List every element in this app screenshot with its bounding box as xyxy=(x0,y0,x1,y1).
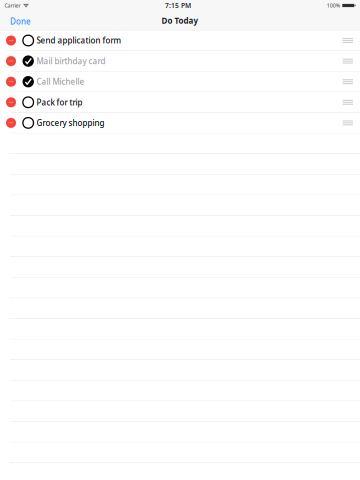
staticText: Carrier xyxy=(4,2,20,9)
button[interactable]: Mail birthday card xyxy=(22,55,105,67)
staticText: Call Michelle xyxy=(36,76,84,87)
button[interactable]: Reorder Call Michelle xyxy=(343,79,353,84)
staticText: 7:15 PM xyxy=(165,1,191,10)
button[interactable]: Reorder Grocery shopping xyxy=(343,120,353,125)
button[interactable]: Call Michelle xyxy=(22,76,84,87)
button[interactable]: Reorder Pack for trip xyxy=(343,100,353,105)
staticText: Done xyxy=(10,16,31,27)
staticText: Do Today xyxy=(161,15,198,26)
button[interactable]: Delete Pack for trip xyxy=(6,97,16,107)
button[interactable]: Reorder Mail birthday card xyxy=(343,59,353,64)
button[interactable]: Grocery shopping xyxy=(22,117,104,129)
staticText: Pack for trip xyxy=(36,97,82,108)
button[interactable]: Delete Mail birthday card xyxy=(6,56,16,66)
staticText: 100% xyxy=(327,2,340,9)
button[interactable]: Delete Send application form xyxy=(6,35,16,45)
button[interactable]: Reorder Send application form xyxy=(343,38,353,43)
button[interactable]: Done xyxy=(0,13,41,30)
staticText: Send application form xyxy=(36,35,121,46)
button[interactable]: Pack for trip xyxy=(22,97,82,108)
staticText: Mail birthday card xyxy=(36,56,105,66)
button[interactable]: Delete Grocery shopping xyxy=(6,118,16,128)
button[interactable]: Delete Call Michelle xyxy=(6,77,16,87)
button[interactable]: Send application form xyxy=(22,35,121,46)
staticText: Grocery shopping xyxy=(36,118,104,128)
